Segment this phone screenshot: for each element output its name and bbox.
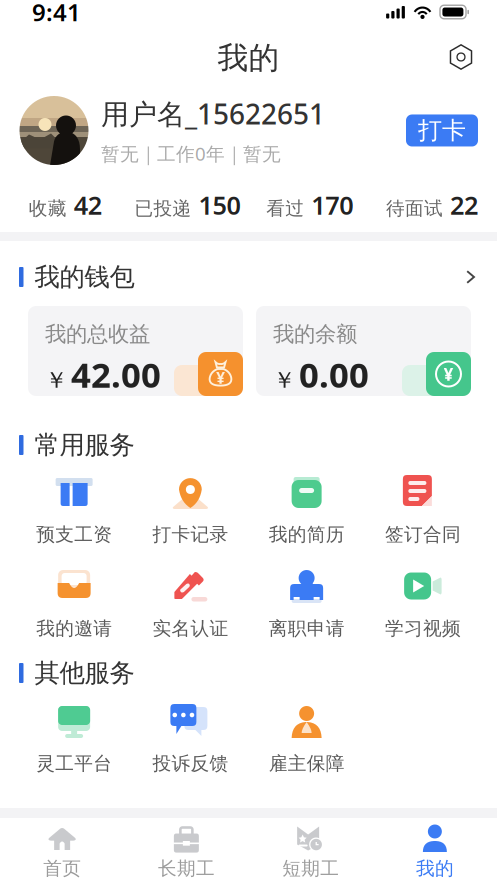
button[interactable]: 我的简历 xyxy=(248,475,365,546)
staticText: 我的简历 xyxy=(269,523,345,546)
staticText: ￥ xyxy=(45,366,68,394)
button[interactable]: 雇主保障 xyxy=(248,704,365,775)
button[interactable]: 看过 xyxy=(248,184,371,226)
staticText: 实名认证 xyxy=(152,617,228,640)
staticText: 长期工 xyxy=(158,857,215,880)
button[interactable]: 短期工 xyxy=(248,826,373,880)
button[interactable]: 打卡记录 xyxy=(132,475,248,546)
staticText: ¥ xyxy=(443,362,453,385)
button[interactable]: 实名认证 xyxy=(132,569,248,640)
staticText: 用户名_15622651 xyxy=(101,95,325,132)
staticText: 0.00 xyxy=(299,351,369,397)
button[interactable]: 打卡 xyxy=(406,114,478,146)
staticText: 短期工 xyxy=(282,857,339,880)
button[interactable]: 离职申请 xyxy=(248,569,365,640)
button[interactable]: 首页 xyxy=(0,826,124,880)
staticText: 我的 xyxy=(217,39,279,77)
staticText: 我的余额 xyxy=(273,321,357,347)
staticText: 雇主保障 xyxy=(269,752,345,775)
button[interactable]: 收藏 xyxy=(4,184,126,226)
button[interactable]: 设置 xyxy=(448,43,476,73)
staticText: 投诉反馈 xyxy=(152,752,228,775)
staticText: 签订合同 xyxy=(385,523,461,546)
staticText: ￥ xyxy=(273,366,296,394)
staticText: 灵工平台 xyxy=(36,752,112,775)
button[interactable]: 签订合同 xyxy=(365,475,481,546)
staticText: 离职申请 xyxy=(269,617,345,640)
staticText: 首页 xyxy=(43,857,81,880)
button[interactable]: 已投递 xyxy=(126,184,248,226)
staticText: 170 xyxy=(311,188,353,222)
button[interactable]: 用户名_15622651 xyxy=(19,95,325,166)
button[interactable]: 我的 xyxy=(373,826,497,880)
staticText: 看过 xyxy=(266,197,304,220)
staticText: 常用服务 xyxy=(34,429,134,460)
staticText: 已投递 xyxy=(134,197,191,220)
staticText: 22 xyxy=(450,188,478,222)
staticText: 150 xyxy=(198,188,240,222)
button[interactable]: 我的钱包 xyxy=(462,266,479,288)
staticText: 我的总收益 xyxy=(45,321,150,347)
button[interactable]: 灵工平台 xyxy=(16,704,132,775)
staticText: 收藏 xyxy=(29,197,67,220)
button[interactable]: 我的余额 xyxy=(256,306,471,396)
button[interactable]: 待面试 xyxy=(371,184,493,226)
staticText: ¥ xyxy=(216,367,225,388)
staticText: 预支工资 xyxy=(36,523,112,546)
staticText: 42 xyxy=(74,188,102,222)
staticText: 其他服务 xyxy=(34,657,134,688)
staticText: 暂无｜工作0年｜暂无 xyxy=(101,141,281,166)
staticText: 我的 xyxy=(416,857,454,880)
staticText: 9:41 xyxy=(32,0,81,28)
button[interactable]: 投诉反馈 xyxy=(132,704,248,775)
staticText: 学习视频 xyxy=(385,617,461,640)
button[interactable]: 我的邀请 xyxy=(16,569,132,640)
staticText: 打卡记录 xyxy=(152,523,228,546)
button[interactable]: 学习视频 xyxy=(365,569,481,640)
staticText: 我的邀请 xyxy=(36,617,112,640)
staticText: 我的钱包 xyxy=(34,261,134,292)
staticText: 打卡 xyxy=(418,116,466,145)
staticText: 42.00 xyxy=(71,351,161,397)
staticText: 待面试 xyxy=(386,197,443,220)
button[interactable]: 我的总收益 xyxy=(28,306,243,396)
button[interactable]: 长期工 xyxy=(124,826,248,880)
button[interactable]: 预支工资 xyxy=(16,475,132,546)
